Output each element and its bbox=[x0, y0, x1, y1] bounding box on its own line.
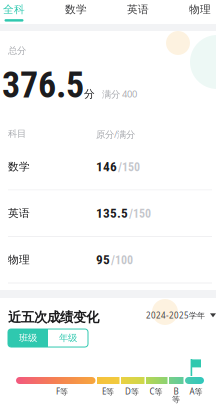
staticText: 物理 bbox=[8, 253, 30, 266]
staticText: 376.5 bbox=[2, 64, 84, 106]
staticText: 数学 bbox=[8, 160, 30, 173]
staticText: /150 bbox=[129, 207, 151, 221]
staticText: 分 bbox=[84, 87, 95, 100]
staticText: 近五次成绩变化 bbox=[8, 309, 99, 325]
staticText: F等 bbox=[56, 386, 68, 397]
staticText: 科目 bbox=[8, 128, 26, 139]
staticText: 英语 bbox=[127, 3, 149, 16]
staticText: C等 bbox=[149, 386, 162, 397]
staticText: 年级 bbox=[59, 332, 77, 344]
button[interactable]: 物理 bbox=[189, 0, 211, 22]
staticText: 总分 bbox=[8, 45, 26, 56]
button[interactable]: 英语 bbox=[127, 0, 149, 22]
staticText: 数学 bbox=[65, 3, 87, 16]
staticText: 等 bbox=[172, 395, 180, 404]
staticText: A等 bbox=[189, 386, 202, 397]
staticText: 2024-2025学年 bbox=[146, 310, 205, 321]
staticText: 满分 400 bbox=[102, 88, 137, 100]
staticText: 146 bbox=[96, 159, 117, 174]
staticText: D等 bbox=[125, 386, 139, 397]
staticText: 135.5 bbox=[96, 205, 128, 221]
staticText: /150 bbox=[118, 160, 140, 174]
staticText: /100 bbox=[111, 253, 133, 267]
button[interactable]: 年级 bbox=[48, 329, 88, 347]
button[interactable]: 数学 bbox=[65, 0, 87, 22]
button[interactable]: 全科 bbox=[3, 0, 25, 22]
staticText: 班级 bbox=[19, 332, 37, 344]
staticText: 英语 bbox=[8, 207, 30, 220]
staticText: E等 bbox=[102, 386, 114, 397]
staticText: 全科 bbox=[3, 3, 25, 16]
staticText: 原分/满分 bbox=[96, 128, 135, 140]
button[interactable]: 班级 bbox=[8, 329, 48, 347]
staticText: B bbox=[173, 386, 178, 397]
staticText: 95 bbox=[96, 252, 110, 267]
staticText: 物理 bbox=[189, 3, 211, 16]
button[interactable]: 2024-2025学年 bbox=[146, 310, 216, 321]
